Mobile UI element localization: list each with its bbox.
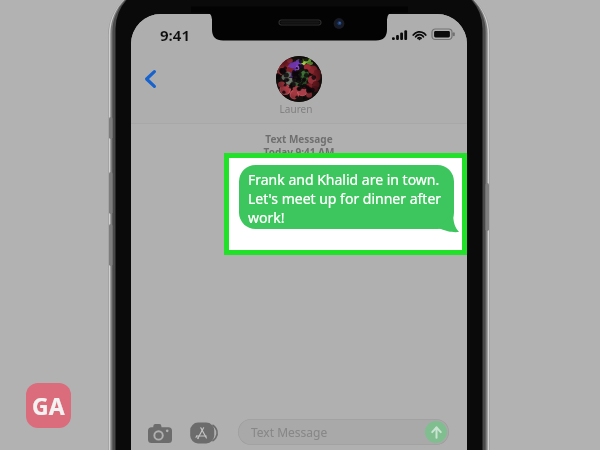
button[interactable]: Back bbox=[135, 64, 165, 94]
staticText: Frank and Khalid are in town. Let's meet… bbox=[248, 170, 442, 227]
button[interactable]: Camera bbox=[146, 422, 173, 445]
staticText: Text Message bbox=[131, 132, 467, 146]
staticText: 9:41 bbox=[160, 25, 190, 45]
staticText: GA bbox=[32, 390, 65, 421]
button[interactable]: Lauren contact bbox=[276, 56, 322, 116]
button[interactable]: GA logo bbox=[26, 383, 71, 428]
button[interactable]: App Store apps bbox=[189, 420, 219, 446]
button[interactable]: Text Message bbox=[238, 419, 449, 445]
staticText: Today 9:41 AM bbox=[131, 145, 467, 159]
staticText: Text Message bbox=[251, 424, 328, 440]
staticText: Lauren bbox=[273, 102, 319, 116]
button[interactable]: Send bbox=[425, 421, 447, 443]
